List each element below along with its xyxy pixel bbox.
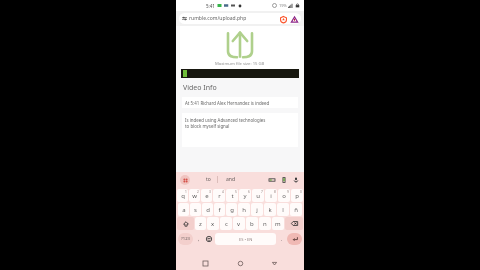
staticText: 9 — [287, 190, 289, 194]
button[interactable]: and — [218, 172, 242, 187]
staticText: 3 — [209, 190, 211, 194]
button[interactable]: b — [246, 217, 258, 230]
staticText: y — [243, 192, 247, 200]
button[interactable]: Enter — [287, 233, 302, 245]
staticText: s — [194, 206, 197, 214]
button[interactable]: Backspace — [285, 217, 303, 230]
staticText: At 5:41 Richard Alex Hernandez is indeed — [185, 100, 270, 106]
staticText: n — [263, 220, 267, 228]
button[interactable]: ñ — [290, 203, 302, 216]
button[interactable]: Home — [235, 258, 246, 269]
staticText: 8 — [274, 190, 276, 194]
staticText: o — [282, 192, 286, 200]
staticText: d — [206, 206, 210, 214]
button[interactable]: f — [214, 203, 225, 216]
button[interactable]: c — [220, 217, 232, 230]
button[interactable]: Voice input — [291, 175, 300, 184]
staticText: ñ — [294, 206, 298, 214]
staticText: r — [218, 192, 221, 200]
staticText: v — [237, 220, 241, 228]
button[interactable]: h — [238, 203, 250, 216]
button[interactable]: Gboard menu — [180, 175, 190, 185]
staticText: . — [281, 236, 283, 243]
button[interactable]: Brave Shields — [279, 15, 287, 23]
staticText: h — [242, 206, 246, 214]
staticText: b — [250, 220, 254, 228]
button[interactable]: s — [190, 203, 201, 216]
button[interactable]: m — [272, 217, 284, 230]
button[interactable]: o — [278, 189, 290, 202]
staticText: m — [275, 220, 281, 228]
staticText: 2 — [197, 190, 199, 194]
staticText: l — [282, 206, 284, 214]
button[interactable]: i — [265, 189, 277, 202]
staticText: z — [199, 220, 202, 228]
button[interactable]: Maximum file size: 15 GB — [180, 26, 300, 69]
button[interactable]: . — [278, 233, 285, 245]
button[interactable]: l — [277, 203, 289, 216]
button[interactable]: z — [195, 217, 206, 230]
staticText: Maximum file size: 15 GB — [215, 61, 265, 67]
button[interactable]: At 5:41 Richard Alex Hernandez is indeed — [182, 97, 298, 108]
button[interactable]: u — [252, 189, 264, 202]
staticText: and — [226, 176, 235, 183]
staticText: , — [198, 236, 200, 243]
button[interactable]: to — [199, 172, 217, 187]
button[interactable]: a — [178, 203, 189, 216]
button[interactable]: e — [201, 189, 212, 202]
button[interactable]: Clipboard — [267, 175, 276, 184]
button[interactable]: , — [195, 233, 202, 245]
staticText: i — [270, 192, 272, 200]
staticText: g — [230, 206, 234, 214]
button[interactable]: y — [239, 189, 251, 202]
button[interactable]: Space — [215, 233, 276, 245]
button[interactable] — [181, 69, 299, 78]
button[interactable]: Translate — [279, 175, 288, 184]
staticText: x — [211, 220, 215, 228]
button[interactable]: Back — [269, 258, 280, 269]
staticText: u — [256, 192, 260, 200]
button[interactable]: ?123 — [178, 233, 193, 245]
button[interactable]: j — [251, 203, 263, 216]
staticText: e — [205, 192, 209, 200]
button[interactable]: g — [226, 203, 237, 216]
staticText: w — [192, 192, 197, 200]
staticText: a — [182, 206, 186, 214]
button[interactable]: r — [213, 189, 225, 202]
button[interactable]: k — [264, 203, 276, 216]
staticText: 4 — [222, 190, 224, 194]
staticText: 5 — [235, 190, 237, 194]
button[interactable]: Emoji — [204, 233, 213, 245]
button[interactable]: q — [177, 189, 188, 202]
staticText: c — [225, 220, 228, 228]
button[interactable]: Recents — [200, 258, 211, 269]
staticText: to — [206, 176, 211, 183]
button[interactable]: w — [189, 189, 200, 202]
staticText: Is indeed using Advanced technologies to… — [185, 117, 266, 129]
staticText: 1 — [185, 190, 187, 194]
button[interactable]: t — [226, 189, 238, 202]
staticText: 19% — [279, 3, 287, 8]
button[interactable]: d — [202, 203, 213, 216]
staticText: Video Info — [183, 83, 217, 93]
staticText: j — [256, 206, 258, 214]
staticText: 0 — [300, 190, 302, 194]
staticText: p — [295, 192, 299, 200]
staticText: rumble.com/upload.php — [189, 15, 247, 22]
button[interactable]: n — [259, 217, 271, 230]
staticText: 5:41 — [206, 3, 215, 9]
button[interactable]: x — [207, 217, 219, 230]
button[interactable]: rumble.com/upload.php — [179, 13, 301, 24]
staticText: ?123 — [181, 236, 191, 242]
staticText: k — [268, 206, 272, 214]
button[interactable]: Warning — [290, 15, 298, 23]
staticText: 7 — [261, 190, 263, 194]
button[interactable]: Shift — [177, 217, 194, 230]
staticText: t — [231, 192, 234, 200]
staticText: 6 — [248, 190, 250, 194]
staticText: f — [218, 206, 221, 214]
button[interactable]: p — [291, 189, 303, 202]
button[interactable]: Is indeed using Advanced technologies to… — [182, 113, 298, 147]
staticText: ES • EN — [239, 237, 253, 242]
button[interactable]: v — [233, 217, 245, 230]
